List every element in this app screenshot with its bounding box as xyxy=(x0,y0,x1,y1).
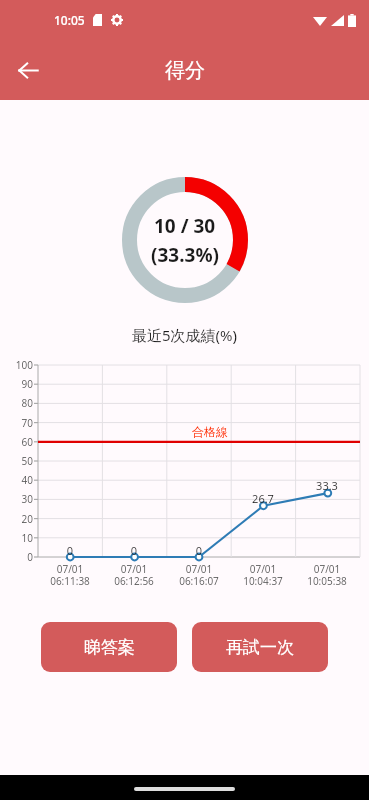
staticText: 10 / 30 xyxy=(154,213,216,239)
staticText: 10 xyxy=(0,531,33,545)
staticText: 30 xyxy=(0,492,33,506)
staticText: 100 xyxy=(0,358,33,372)
staticText: 07/01 06:16:07 xyxy=(167,562,231,588)
staticText: 07/01 06:11:38 xyxy=(38,562,102,588)
staticText: 再試一次 xyxy=(226,637,294,658)
staticText: 60 xyxy=(0,435,33,449)
staticText: 07/01 10:04:37 xyxy=(231,562,295,588)
staticText: 20 xyxy=(0,512,33,526)
button[interactable]: Back xyxy=(6,48,50,92)
staticText: 合格線 xyxy=(192,424,228,439)
button[interactable]: 再試一次 xyxy=(192,622,328,672)
staticText: 70 xyxy=(0,416,33,430)
staticText: 0 xyxy=(45,543,95,558)
staticText: 10:05 xyxy=(54,12,85,28)
staticText: 0 xyxy=(174,543,224,558)
staticText: 得分 xyxy=(165,58,205,83)
staticText: 50 xyxy=(0,454,33,468)
staticText: 0 xyxy=(109,543,159,558)
staticText: 07/01 06:12:56 xyxy=(102,562,166,588)
staticText: 33.3 xyxy=(302,478,352,493)
staticText: 07/01 10:05:38 xyxy=(295,562,359,588)
staticText: 最近5次成績(%) xyxy=(0,325,369,345)
staticText: 睇答案 xyxy=(84,637,135,658)
staticText: 80 xyxy=(0,396,33,410)
staticText: 90 xyxy=(0,377,33,391)
button[interactable]: 睇答案 xyxy=(41,622,177,672)
staticText: 40 xyxy=(0,473,33,487)
staticText: (33.3%) xyxy=(151,242,219,268)
staticText: 26.7 xyxy=(238,491,288,506)
staticText: 0 xyxy=(0,550,33,564)
